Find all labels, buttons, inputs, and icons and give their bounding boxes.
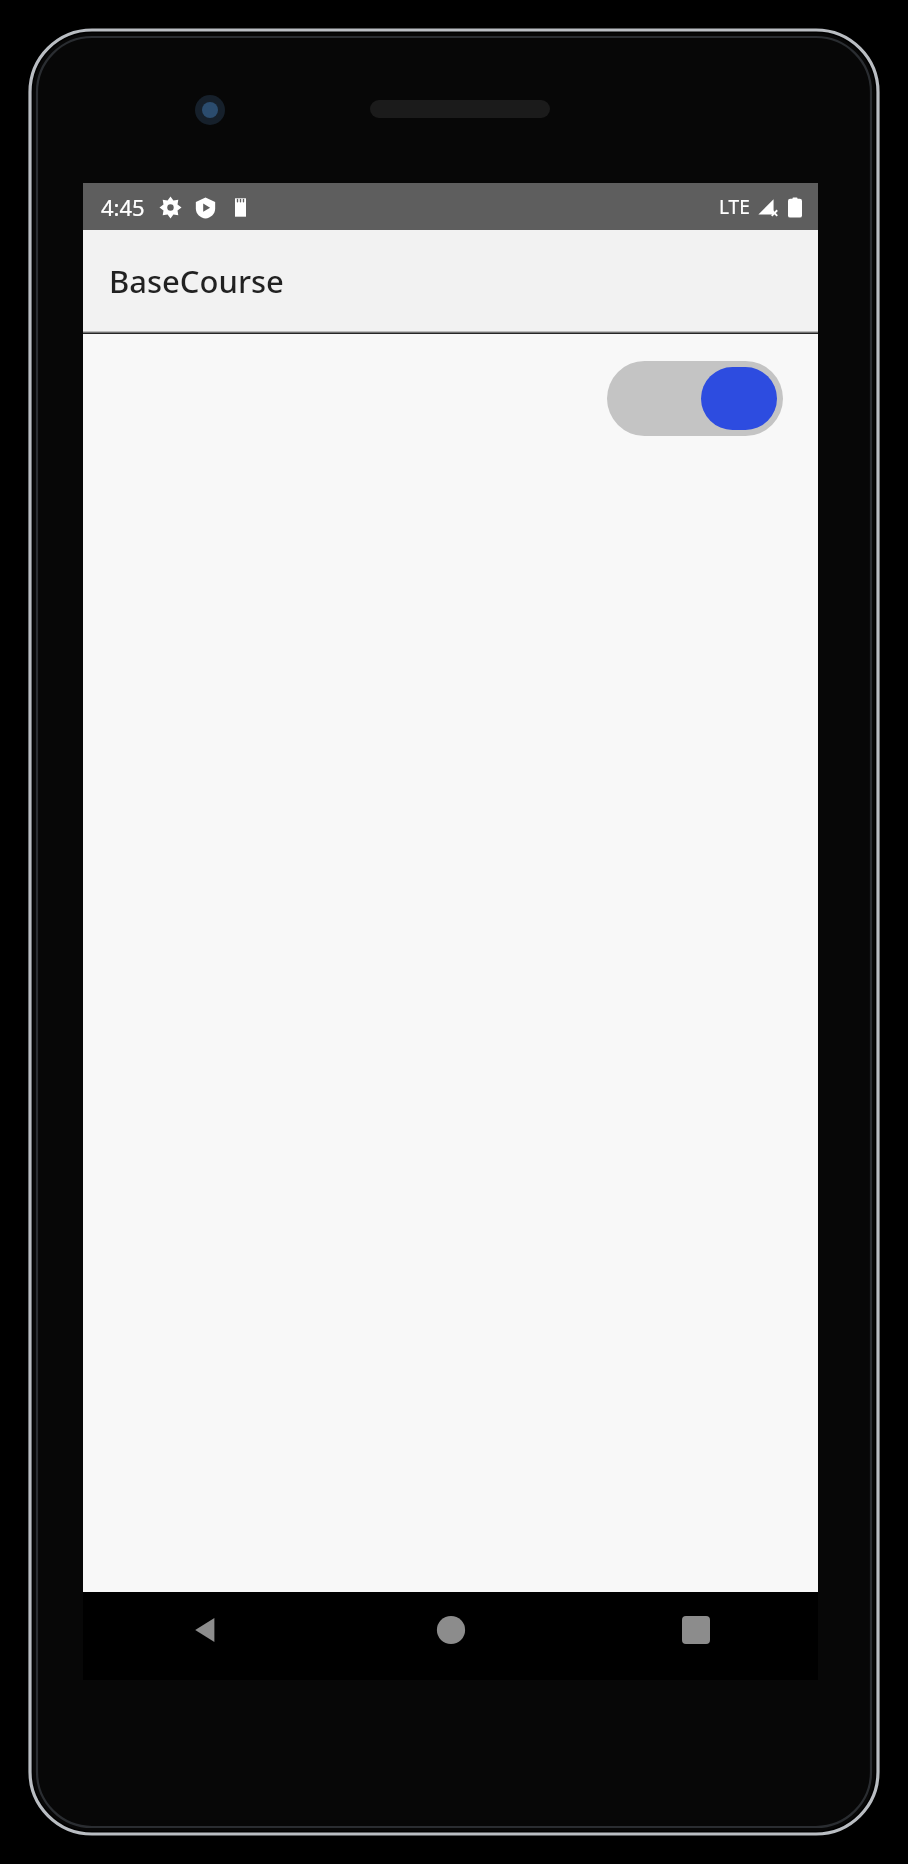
staticText: 4:45 — [101, 192, 145, 222]
staticText: BaseCourse — [109, 260, 284, 302]
button[interactable]: Recent apps — [573, 1592, 818, 1680]
button[interactable]: Home — [328, 1592, 573, 1680]
staticText: LTE — [719, 194, 750, 220]
button[interactable]: Toggle — [607, 361, 783, 436]
button[interactable]: Back — [83, 1592, 328, 1680]
